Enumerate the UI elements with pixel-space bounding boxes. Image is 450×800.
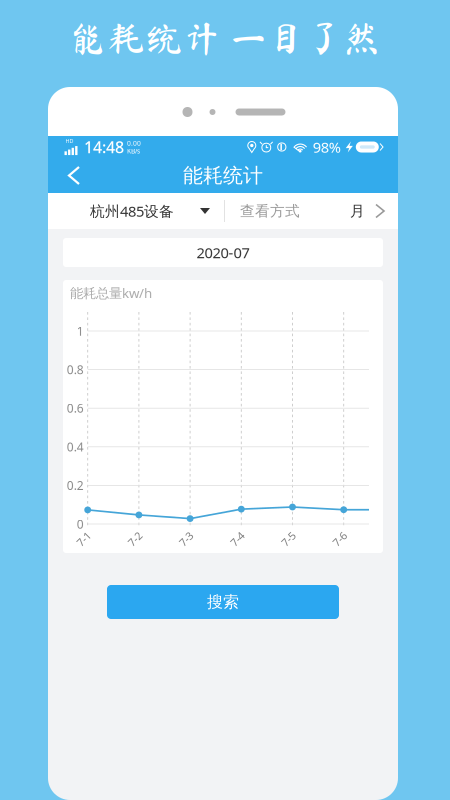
staticText: 7-2 (127, 532, 142, 546)
staticText: 0.00 (127, 139, 141, 147)
button[interactable]: 搜索 (107, 585, 339, 619)
button[interactable]: 杭州485设备 (48, 193, 224, 229)
staticText: 能耗统计 一目了然 (70, 20, 380, 56)
staticText: 0.4 (67, 439, 84, 455)
staticText: 14:48 (84, 136, 124, 158)
staticText: 7-1 (76, 532, 91, 546)
staticText: 2020-07 (196, 243, 249, 262)
button[interactable]: 查看方式 (225, 193, 398, 229)
staticText: 7-5 (281, 532, 296, 546)
staticText: 7-4 (230, 532, 245, 546)
staticText: 1 (77, 323, 84, 339)
staticText: 能耗总量kw/h (70, 284, 152, 302)
staticText: 月 (350, 202, 365, 220)
staticText: 0 (77, 516, 84, 532)
staticText: 0.6 (67, 400, 84, 416)
staticText: 4G HD (65, 130, 73, 145)
staticText: 98% (313, 137, 341, 157)
button[interactable]: 2020-07 (63, 238, 383, 267)
staticText: 搜索 (207, 592, 239, 612)
staticText: 7-6 (332, 532, 347, 546)
staticText: 查看方式 (240, 202, 300, 220)
staticText: 7-3 (179, 532, 194, 546)
staticText: KB/s (127, 146, 140, 155)
staticText: 0.8 (67, 362, 84, 377)
staticText: 能耗统计 (183, 163, 263, 188)
staticText: 杭州485设备 (90, 201, 174, 221)
button[interactable]: Back (48, 159, 93, 192)
staticText: 0.2 (67, 477, 84, 493)
